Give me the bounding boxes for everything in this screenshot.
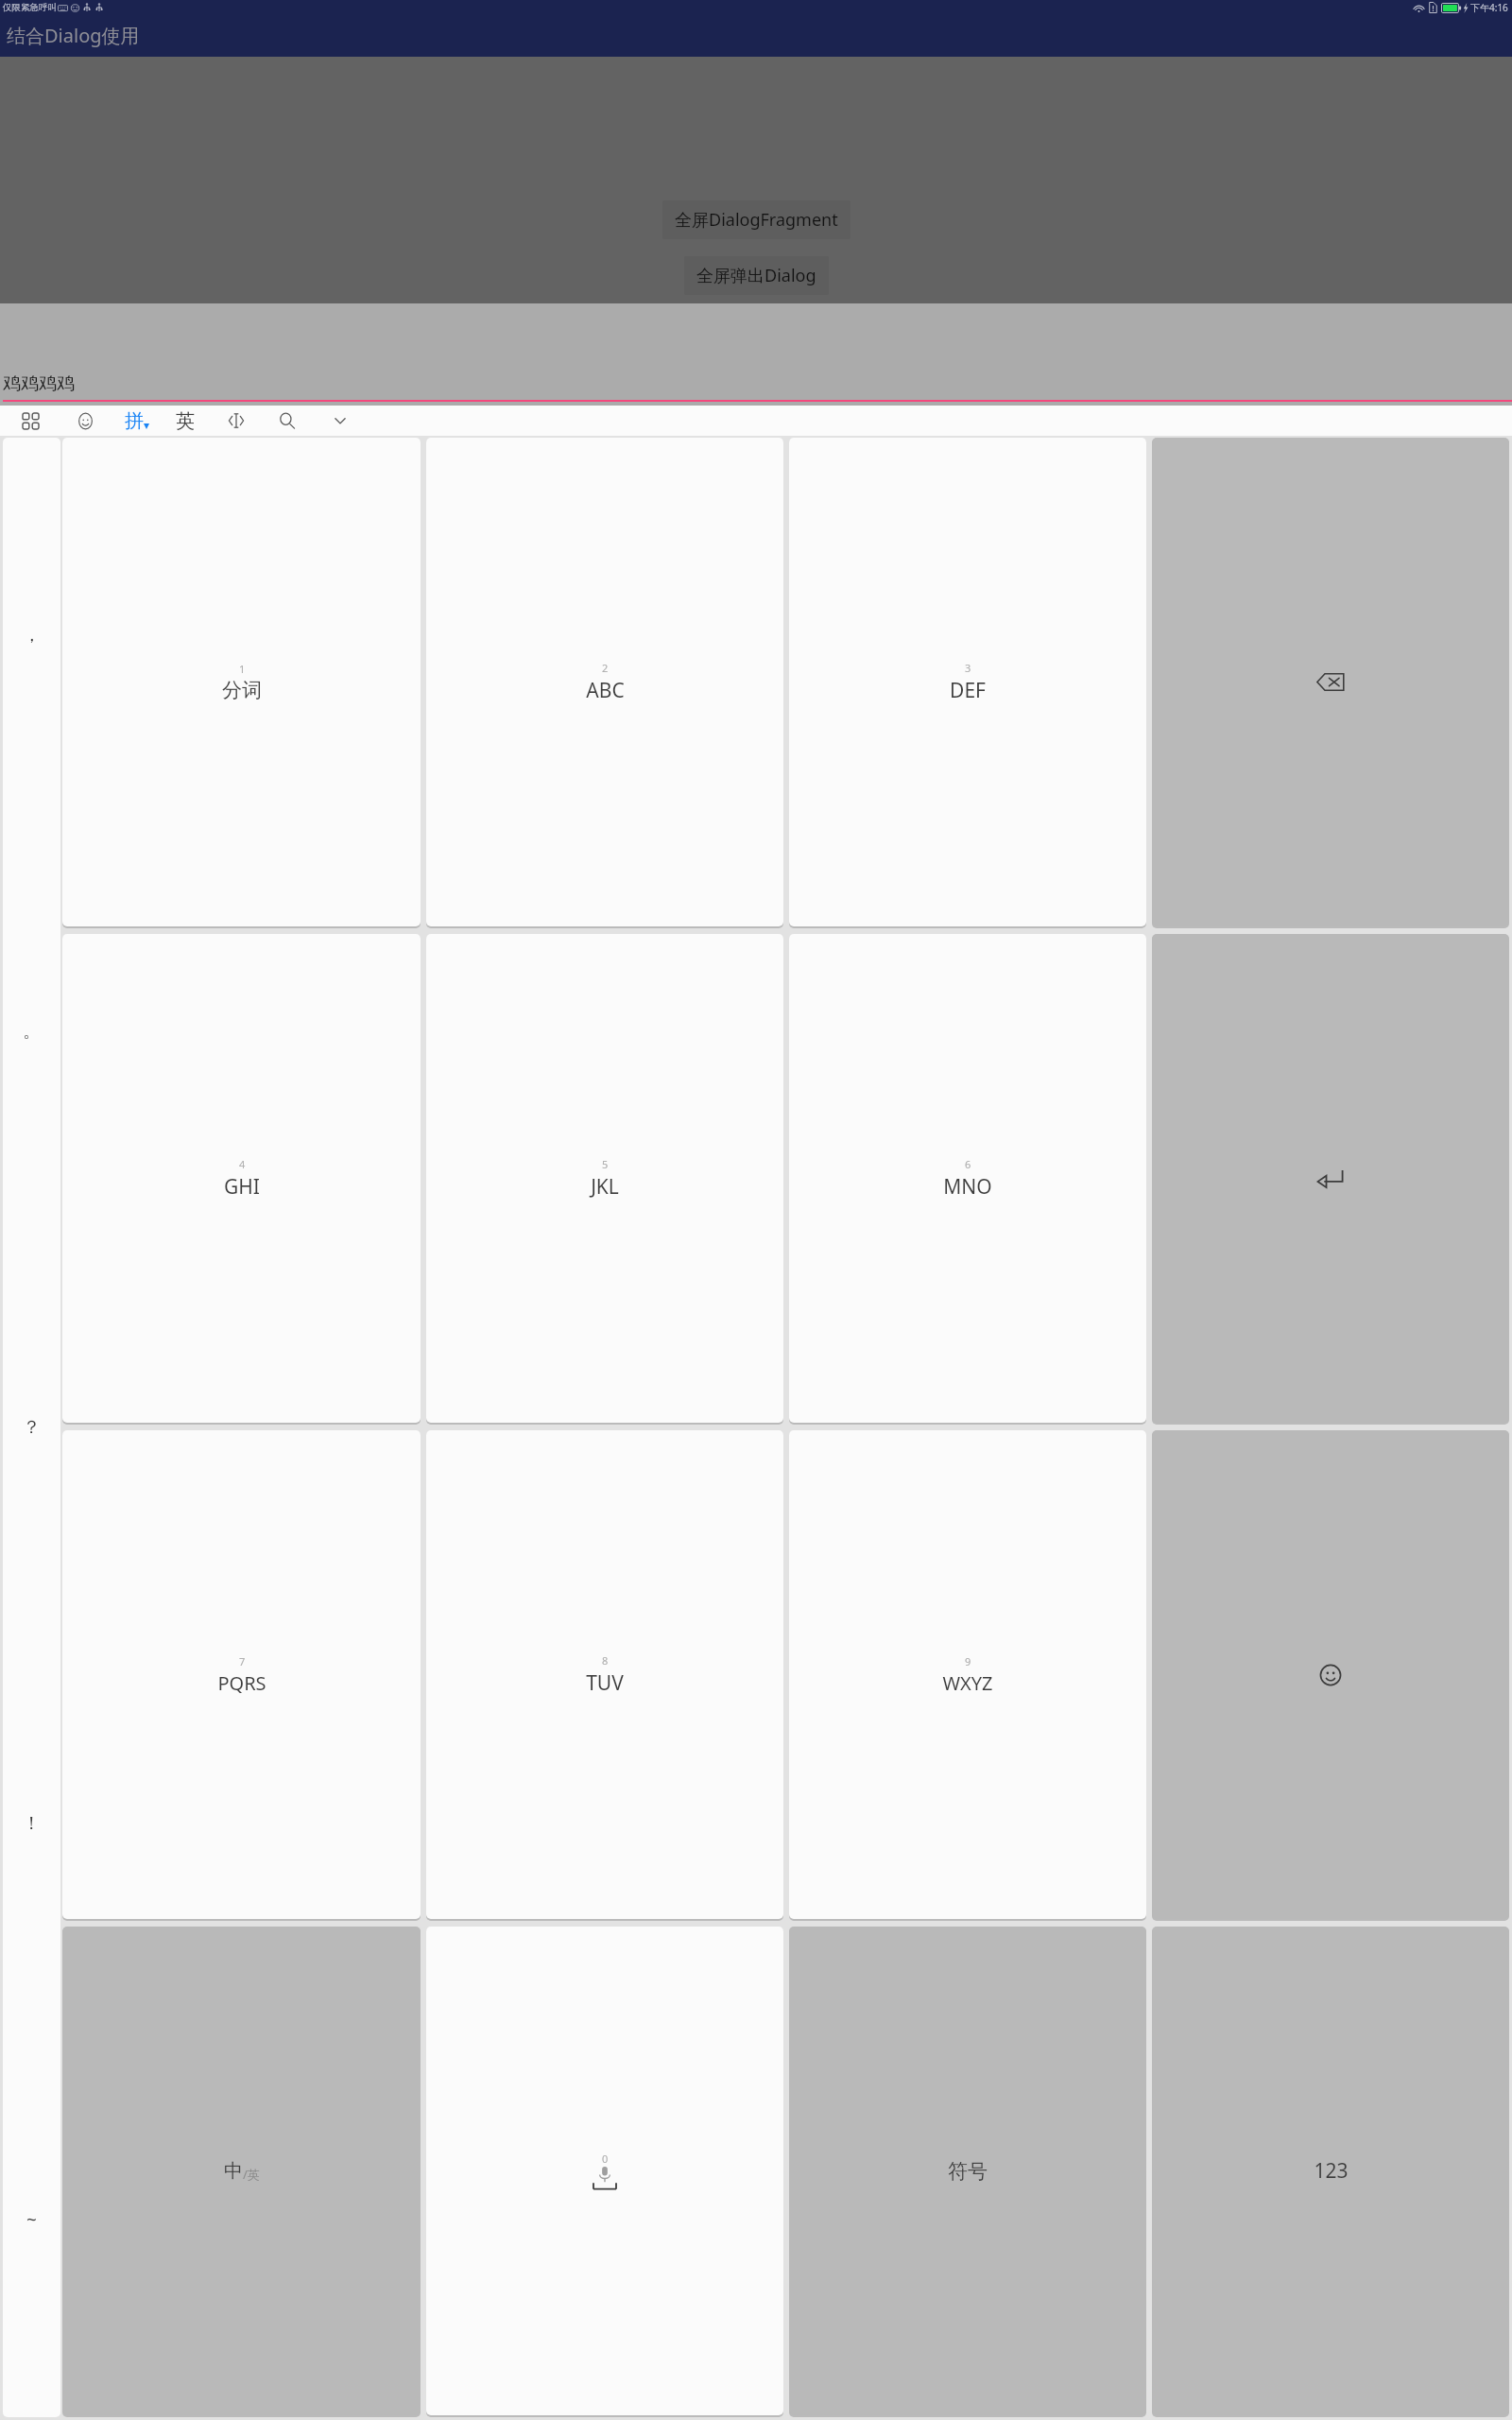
staticText: ！: [23, 1812, 41, 1835]
staticText: 4: [239, 1157, 246, 1171]
staticText: ABC: [586, 677, 625, 704]
staticText: 6: [965, 1157, 971, 1171]
staticText: ？: [23, 1416, 41, 1439]
staticText: 中: [224, 2159, 243, 2183]
staticText: 全屏DialogFragment: [675, 208, 838, 232]
staticText: 分词: [222, 678, 262, 702]
staticText: 英: [176, 409, 195, 433]
button[interactable]: 3: [789, 438, 1146, 928]
button[interactable]: Emoji: [66, 406, 104, 436]
staticText: 0: [602, 2152, 609, 2166]
staticText: 3: [965, 661, 971, 675]
button[interactable]: Emoji: [1152, 1430, 1509, 1921]
staticText: 1: [239, 662, 246, 676]
staticText: PQRS: [217, 1670, 266, 1696]
staticText: 9: [965, 1654, 971, 1668]
button[interactable]: Hide keyboard: [321, 406, 359, 436]
button[interactable]: Keyboard layouts: [11, 406, 49, 436]
staticText: DEF: [950, 677, 986, 704]
button[interactable]: 中: [62, 1927, 421, 2417]
button[interactable]: Move cursor: [217, 406, 255, 436]
button[interactable]: Pinyin input: [118, 406, 156, 436]
button[interactable]: 符号: [789, 1927, 1146, 2417]
staticText: 123: [1314, 2157, 1349, 2185]
button[interactable]: 4: [62, 934, 421, 1425]
staticText: 拼: [125, 409, 144, 433]
staticText: 5: [602, 1157, 609, 1171]
staticText: 鸡鸡鸡鸡: [3, 372, 75, 395]
staticText: 结合Dialog使用: [7, 23, 140, 48]
staticText: 全屏弹出Dialog: [696, 264, 816, 287]
button[interactable]: 9: [789, 1430, 1146, 1921]
staticText: 2: [602, 661, 609, 675]
button[interactable]: Search: [268, 406, 306, 436]
button[interactable]: ~: [3, 2021, 60, 2417]
button[interactable]: 5: [426, 934, 783, 1425]
button[interactable]: Backspace: [1152, 438, 1509, 928]
button[interactable]: 1: [62, 438, 421, 928]
button[interactable]: Space: [426, 1927, 783, 2417]
button[interactable]: 全屏DialogFragment: [662, 200, 850, 239]
button[interactable]: 6: [789, 934, 1146, 1425]
button[interactable]: ！: [3, 1625, 60, 2021]
staticText: 仅限紧急呼叫: [3, 2, 57, 13]
staticText: /英: [243, 2166, 260, 2183]
button[interactable]: English input: [166, 406, 204, 436]
button[interactable]: 全屏弹出Dialog: [684, 256, 829, 295]
staticText: 7: [239, 1654, 246, 1668]
button[interactable]: ？: [3, 1229, 60, 1625]
staticText: JKL: [591, 1173, 619, 1201]
staticText: 。: [23, 1020, 41, 1043]
button[interactable]: 2: [426, 438, 783, 928]
staticText: WXYZ: [942, 1670, 993, 1696]
staticText: 8: [602, 1653, 609, 1668]
staticText: TUV: [586, 1669, 624, 1697]
staticText: GHI: [224, 1173, 260, 1201]
staticText: 符号: [948, 2159, 988, 2184]
button[interactable]: 8: [426, 1430, 783, 1921]
staticText: ~: [26, 2207, 37, 2232]
staticText: ，: [23, 624, 41, 647]
staticText: 下午4:16: [1470, 1, 1508, 14]
staticText: MNO: [943, 1173, 992, 1201]
button[interactable]: 7: [62, 1430, 421, 1921]
